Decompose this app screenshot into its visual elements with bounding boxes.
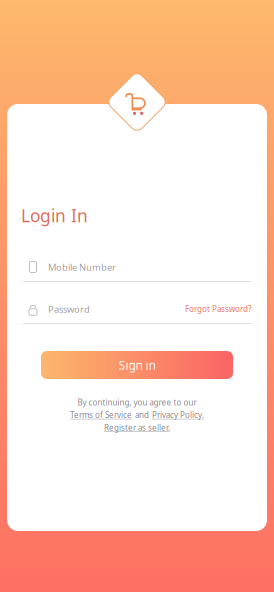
button[interactable]: Register as seller. xyxy=(104,422,170,433)
staticText: Register as seller. xyxy=(104,422,170,433)
staticText: Forgot Password? xyxy=(185,304,251,314)
staticText: Terms of Service xyxy=(70,410,132,420)
button[interactable]: Sign in xyxy=(41,351,233,379)
button[interactable]: Forgot Password? xyxy=(185,304,251,314)
staticText: Mobile Number xyxy=(48,261,116,273)
staticText: Login In xyxy=(21,204,88,227)
staticText: Sign in xyxy=(118,357,155,373)
button[interactable]: Terms of Service xyxy=(70,410,132,420)
staticText: Privacy Policy. xyxy=(152,410,204,420)
button[interactable]: Privacy Policy. xyxy=(152,410,204,420)
staticText: and xyxy=(135,410,149,420)
staticText: By continuing, you agree to our xyxy=(77,397,196,408)
staticText: Password xyxy=(48,303,90,315)
